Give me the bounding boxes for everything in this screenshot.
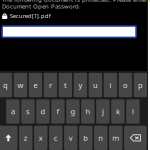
button[interactable]: Delete (124, 126, 147, 150)
staticText: Document Open Password. (2, 2, 81, 10)
button[interactable]: n (94, 126, 107, 150)
button[interactable]: z (19, 126, 32, 150)
button[interactable]: p (134, 73, 147, 97)
staticText: q (3, 80, 8, 90)
staticText: r (49, 80, 52, 90)
staticText: k (116, 106, 120, 117)
staticText: b (83, 133, 88, 143)
staticText: i (109, 80, 111, 90)
staticText: v (69, 133, 73, 143)
staticText: z (24, 133, 28, 143)
button[interactable]: t (59, 73, 72, 97)
button[interactable]: i (104, 73, 117, 97)
staticText: n (98, 133, 103, 143)
button[interactable]: o (119, 73, 132, 97)
staticText: t (64, 80, 67, 90)
staticText: w (17, 80, 23, 90)
button[interactable]: g (66, 99, 80, 124)
staticText: c (54, 133, 58, 143)
staticText: y (78, 80, 82, 90)
staticText: p (138, 80, 143, 90)
staticText: o (123, 80, 128, 90)
staticText: u (93, 80, 98, 90)
button[interactable]: h (81, 99, 95, 124)
button[interactable]: d (36, 99, 50, 124)
button[interactable]: k (111, 99, 125, 124)
staticText: The following document is protected. Ple… (2, 0, 150, 4)
staticText: Secured[1].pdf (10, 12, 51, 20)
staticText: f (56, 106, 59, 117)
staticText: l (132, 106, 134, 117)
button[interactable]: m (109, 126, 122, 150)
button[interactable]: j (96, 99, 110, 124)
button[interactable]: b (79, 126, 92, 150)
staticText: m (112, 133, 119, 143)
button[interactable]: a (6, 99, 20, 124)
button[interactable]: x (34, 126, 47, 150)
staticText: x (39, 133, 43, 143)
button[interactable]: w (14, 73, 27, 97)
button[interactable]: Shift (0, 126, 17, 150)
staticText: j (102, 106, 104, 117)
staticText: d (40, 106, 45, 117)
button[interactable]: r (44, 73, 57, 97)
button[interactable]: u (89, 73, 102, 97)
staticText: a (11, 106, 15, 117)
button[interactable]: c (49, 126, 62, 150)
staticText: e (33, 80, 37, 90)
button[interactable]: f (51, 99, 65, 124)
staticText: s (26, 106, 30, 117)
staticText: g (70, 106, 75, 117)
button[interactable]: y (74, 73, 87, 97)
button[interactable]: s (21, 99, 35, 124)
staticText: h (85, 106, 90, 117)
button[interactable]: l (126, 99, 140, 124)
button[interactable]: e (29, 73, 42, 97)
button[interactable]: v (64, 126, 77, 150)
button[interactable]: q (0, 73, 12, 97)
